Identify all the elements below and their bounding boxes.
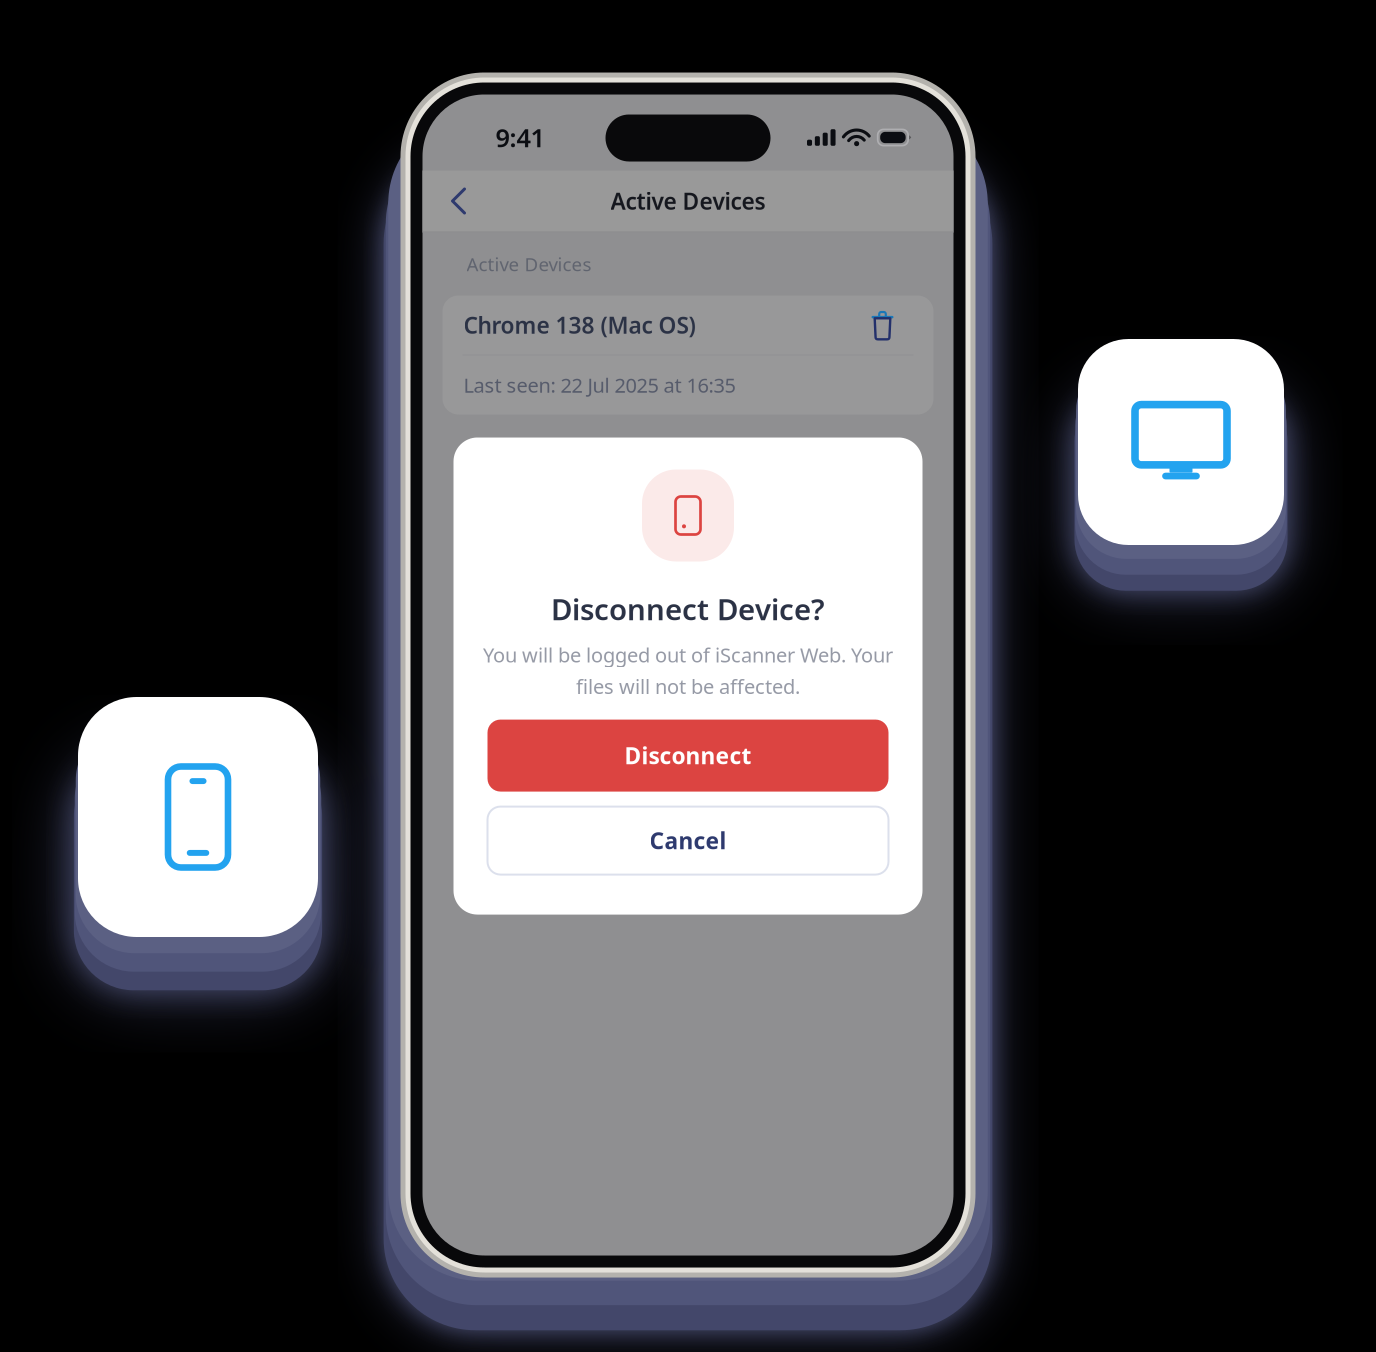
staticText: Active Devices xyxy=(610,186,765,216)
staticText: 9:41 xyxy=(495,121,544,154)
staticText: Last seen: 22 Jul 2025 at 16:35 xyxy=(463,372,735,398)
staticText: Active Devices xyxy=(466,252,591,276)
button[interactable]: Back xyxy=(431,170,485,232)
staticText: Disconnect Device? xyxy=(551,589,825,628)
button[interactable]: Remove device xyxy=(852,301,912,349)
staticText: Disconnect xyxy=(624,740,751,771)
button[interactable]: Cancel xyxy=(487,807,888,875)
staticText: files will not be affected. xyxy=(576,673,800,700)
button[interactable]: Disconnect xyxy=(487,720,888,792)
staticText: Chrome 138 (Mac OS) xyxy=(463,310,695,340)
staticText: Cancel xyxy=(649,825,726,856)
staticText: You will be logged out of iScanner Web. … xyxy=(483,641,893,668)
